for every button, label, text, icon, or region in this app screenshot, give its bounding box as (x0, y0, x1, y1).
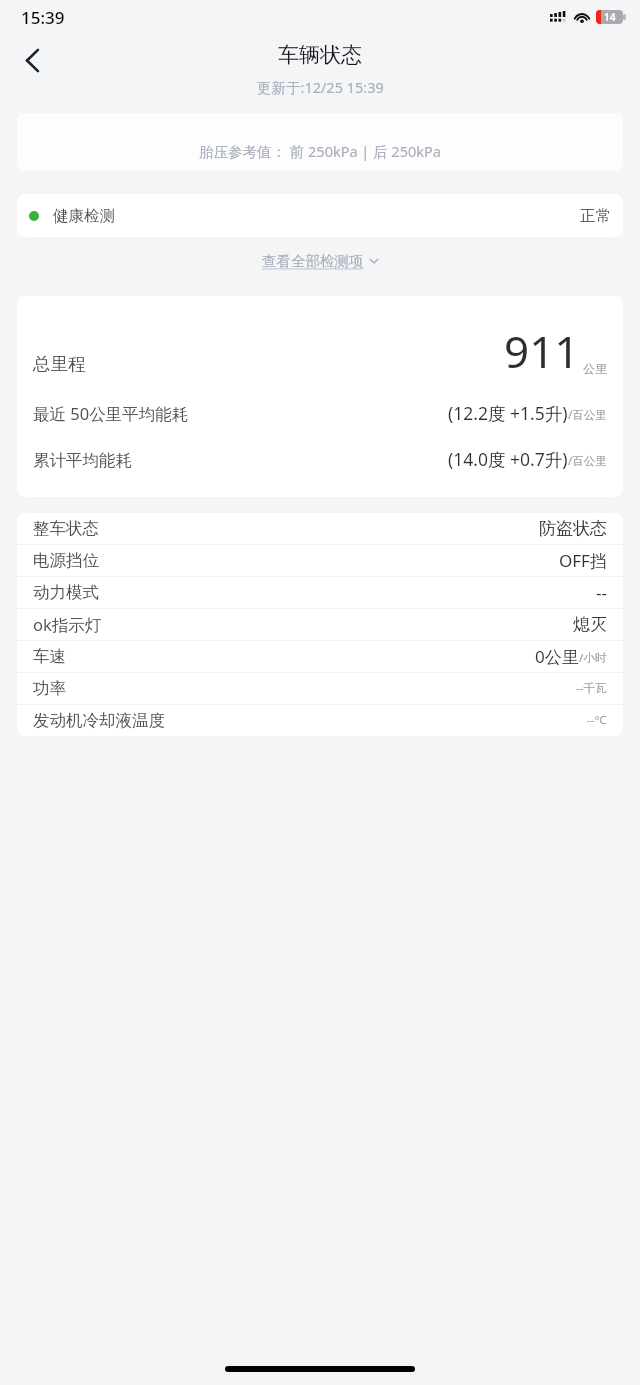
staticText: /百公里 (568, 407, 607, 423)
button[interactable]: 电源挡位 (17, 545, 623, 576)
staticText: 更新于:12/25 15:39 (257, 77, 384, 97)
staticText: 熄灭 (573, 614, 607, 635)
staticText: 胎压参考值： 前 250kPa | 后 250kPa (199, 141, 441, 161)
staticText: (14.0度 +0.7升) (448, 447, 568, 471)
staticText: 功率 (33, 678, 66, 699)
staticText: /百公里 (568, 453, 607, 469)
staticText: -- (596, 581, 607, 604)
button[interactable]: 查看全部检测项 (256, 249, 385, 273)
staticText: 查看全部检测项 (262, 252, 364, 270)
staticText: 车速 (33, 646, 66, 667)
staticText: 正常 (580, 206, 611, 226)
button[interactable]: Back (10, 38, 54, 82)
button[interactable]: 整车状态 (17, 513, 623, 544)
staticText: ok指示灯 (33, 613, 102, 636)
staticText: --°C (587, 712, 607, 728)
button[interactable]: 健康检测 (17, 194, 623, 237)
staticText: 总里程 (33, 353, 86, 375)
staticText: 电源挡位 (33, 550, 99, 571)
button[interactable]: 胎压参考值： 前 250kPa | 后 250kPa (17, 113, 623, 171)
button[interactable]: 车速 (17, 641, 623, 672)
staticText: 15:39 (21, 6, 65, 29)
button[interactable]: 发动机冷却液温度 (17, 705, 623, 736)
staticText: 累计平均能耗 (33, 450, 132, 471)
staticText: /小时 (579, 650, 607, 666)
staticText: OFF挡 (559, 549, 607, 572)
staticText: --千瓦 (576, 680, 607, 696)
staticText: 防盗状态 (539, 518, 607, 539)
staticText: 车辆状态 (278, 42, 362, 68)
staticText: (12.2度 +1.5升) (448, 401, 568, 425)
staticText: 911 (504, 321, 580, 381)
staticText: 动力模式 (33, 582, 99, 603)
staticText: 最近 50公里平均能耗 (33, 402, 189, 425)
staticText: 整车状态 (33, 518, 99, 539)
button[interactable]: 功率 (17, 673, 623, 704)
staticText: 发动机冷却液温度 (33, 710, 165, 731)
staticText: 0公里 (535, 645, 579, 668)
button[interactable]: ok指示灯 (17, 609, 623, 640)
button[interactable]: 动力模式 (17, 577, 623, 608)
staticText: 公里 (583, 361, 607, 376)
staticText: 健康检测 (53, 206, 115, 226)
staticText: 14 (604, 10, 616, 24)
